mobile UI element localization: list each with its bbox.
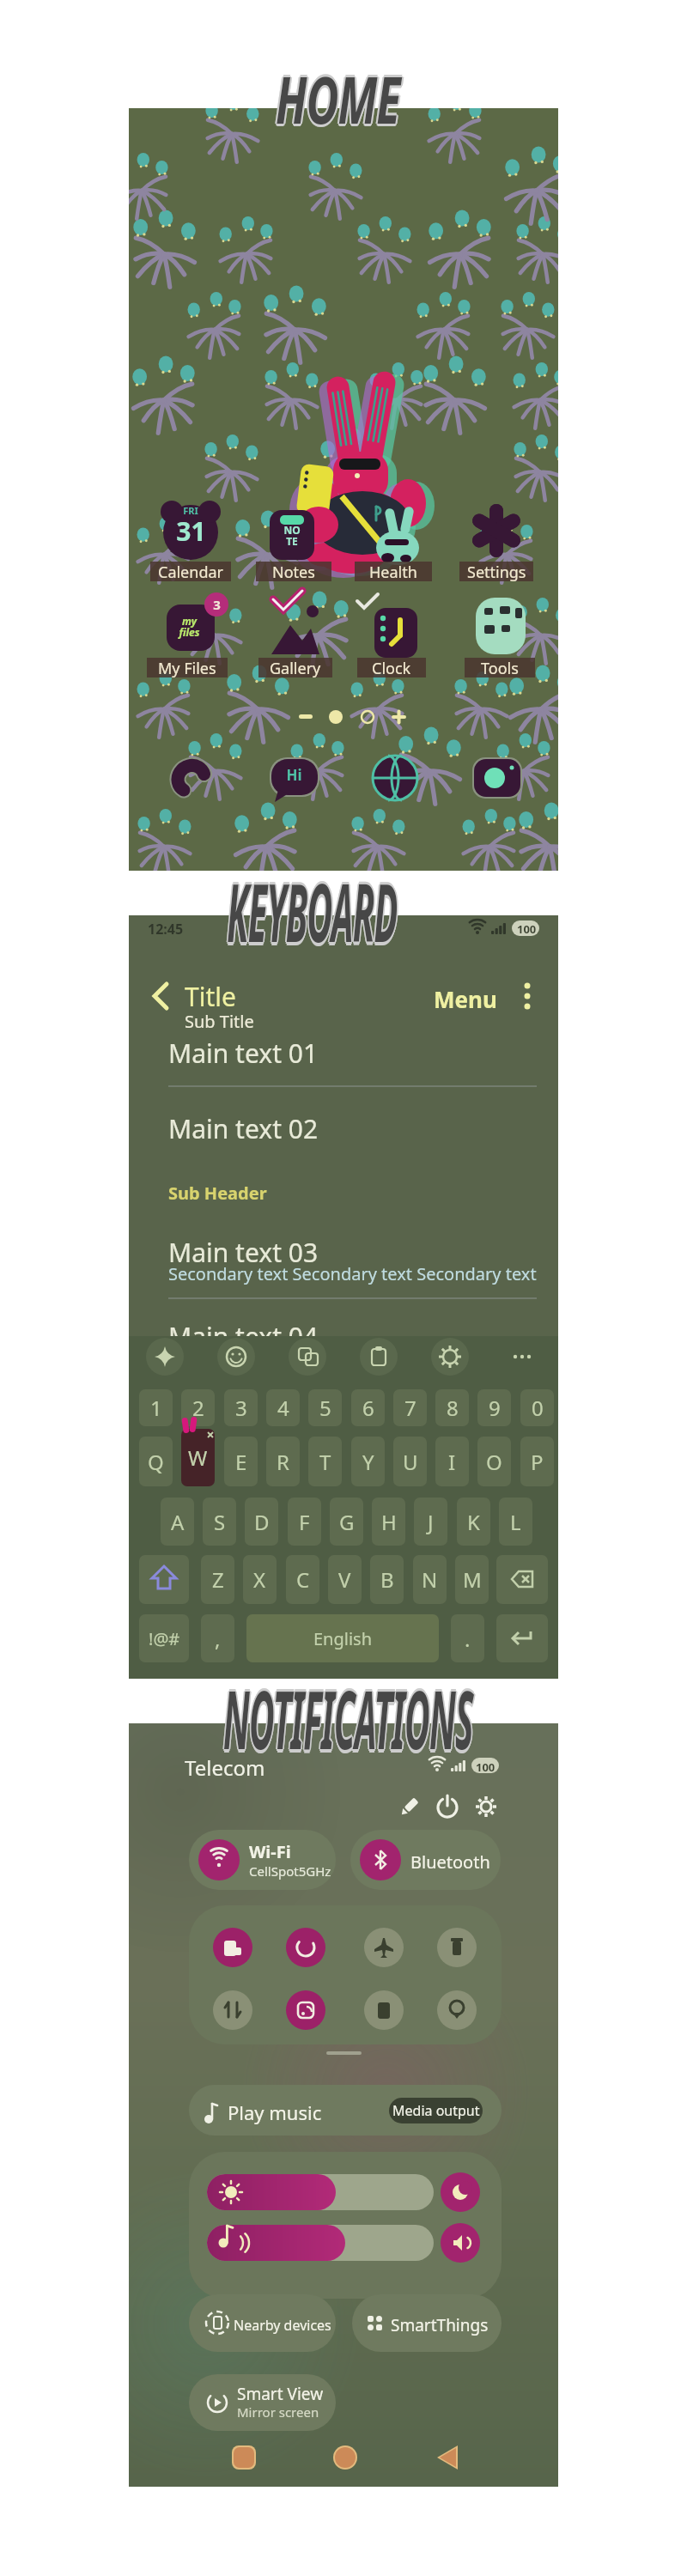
- staticText: K: [467, 1508, 480, 1536]
- button[interactable]: Media output: [389, 2098, 483, 2123]
- staticText: Sub Header: [168, 1182, 267, 1205]
- button[interactable]: I: [435, 1437, 469, 1486]
- button[interactable]: E: [224, 1437, 258, 1486]
- button[interactable]: SmartThings: [352, 2294, 502, 2352]
- staticText: Main text 04: [168, 1319, 319, 1354]
- button[interactable]: G: [330, 1498, 363, 1546]
- staticText: S: [214, 1508, 226, 1536]
- button[interactable]: J: [414, 1498, 447, 1546]
- staticText: L: [510, 1508, 521, 1536]
- button[interactable]: Gallery: [258, 658, 332, 677]
- button[interactable]: T: [308, 1437, 342, 1486]
- button[interactable]: K: [457, 1498, 490, 1546]
- staticText: C: [296, 1565, 310, 1594]
- button[interactable]: 3: [224, 1389, 258, 1426]
- button[interactable]: 9: [477, 1389, 511, 1426]
- button[interactable]: L: [499, 1498, 532, 1546]
- staticText: N: [422, 1565, 438, 1594]
- button[interactable]: [139, 1555, 189, 1604]
- staticText: Z: [212, 1565, 224, 1594]
- button[interactable]: Calendar: [150, 562, 231, 581]
- button[interactable]: 8: [435, 1389, 469, 1426]
- button[interactable]: Settings: [459, 562, 533, 581]
- staticText: Main text 02: [168, 1111, 319, 1146]
- button[interactable]: R: [266, 1437, 300, 1486]
- staticText: Tools: [481, 658, 519, 677]
- staticText: Telecom: [185, 1753, 265, 1782]
- staticText: HOME: [277, 53, 401, 141]
- staticText: Media output: [392, 2101, 480, 2120]
- staticText: HOME: [274, 54, 398, 143]
- staticText: I: [448, 1448, 456, 1476]
- button[interactable]: ,: [201, 1614, 234, 1662]
- button[interactable]: [496, 1614, 548, 1662]
- button[interactable]: 4: [266, 1389, 300, 1426]
- button[interactable]: Q: [139, 1437, 173, 1486]
- button[interactable]: P: [520, 1437, 554, 1486]
- staticText: 1: [150, 1394, 162, 1422]
- button[interactable]: 2: [181, 1389, 215, 1426]
- button[interactable]: Y: [351, 1437, 385, 1486]
- button[interactable]: 1: [139, 1389, 173, 1426]
- staticText: KEYBOARD: [226, 856, 396, 965]
- button[interactable]: X: [243, 1555, 277, 1604]
- staticText: KEYBOARD: [227, 859, 397, 969]
- button[interactable]: !@#: [139, 1614, 189, 1662]
- button[interactable]: F: [288, 1498, 321, 1546]
- staticText: NOTIFICATIONS: [223, 1663, 473, 1773]
- button[interactable]: Notes: [256, 562, 331, 581]
- staticText: Q: [148, 1448, 164, 1476]
- button[interactable]: English: [246, 1614, 439, 1662]
- button[interactable]: H: [372, 1498, 405, 1546]
- staticText: Health: [369, 562, 417, 581]
- staticText: R: [277, 1448, 289, 1476]
- button[interactable]: M: [455, 1555, 489, 1604]
- button[interactable]: 7: [393, 1389, 427, 1426]
- button[interactable]: S: [203, 1498, 236, 1546]
- staticText: 100: [476, 1759, 495, 1775]
- staticText: E: [235, 1448, 247, 1476]
- staticText: H: [381, 1508, 397, 1536]
- button[interactable]: Tools: [465, 658, 535, 677]
- button[interactable]: U: [393, 1437, 427, 1486]
- button[interactable]: [181, 1429, 215, 1486]
- button[interactable]: B: [370, 1555, 404, 1604]
- button[interactable]: Clock: [357, 658, 426, 677]
- staticText: my files: [179, 614, 200, 640]
- staticText: HOME: [276, 54, 400, 143]
- button[interactable]: [496, 1555, 548, 1604]
- button[interactable]: V: [328, 1555, 362, 1604]
- staticText: 7: [404, 1394, 416, 1422]
- staticText: KEYBOARD: [227, 856, 397, 965]
- button[interactable]: A: [161, 1498, 194, 1546]
- staticText: 31: [176, 513, 206, 549]
- button[interactable]: Play music: [189, 2085, 502, 2136]
- button[interactable]: Nearby devices: [189, 2294, 336, 2352]
- staticText: 2: [192, 1394, 204, 1422]
- button[interactable]: C: [286, 1555, 319, 1604]
- button[interactable]: Health: [355, 562, 432, 581]
- staticText: NOTIFICATIONS: [223, 1660, 473, 1770]
- button[interactable]: .: [451, 1614, 484, 1662]
- button[interactable]: 0: [520, 1389, 554, 1426]
- button[interactable]: Smart View: [189, 2374, 336, 2431]
- button[interactable]: D: [245, 1498, 278, 1546]
- button[interactable]: 6: [351, 1389, 385, 1426]
- staticText: SmartThings: [391, 2314, 489, 2336]
- button[interactable]: Wi-Fi: [189, 1830, 336, 1890]
- staticText: Wi-Fi: [249, 1840, 291, 1863]
- staticText: 3: [235, 1394, 247, 1422]
- button[interactable]: O: [477, 1437, 511, 1486]
- button[interactable]: Bluetooth: [350, 1830, 501, 1890]
- button[interactable]: 5: [308, 1389, 342, 1426]
- staticText: F: [299, 1508, 310, 1536]
- staticText: 12:45: [148, 920, 184, 939]
- staticText: KEYBOARD: [228, 854, 398, 964]
- staticText: Main text 03: [168, 1235, 319, 1270]
- button[interactable]: My Files: [147, 658, 228, 677]
- button[interactable]: N: [413, 1555, 447, 1604]
- staticText: 0: [532, 1394, 544, 1422]
- button[interactable]: Z: [201, 1555, 234, 1604]
- staticText: P: [531, 1448, 544, 1476]
- staticText: FRI: [183, 504, 198, 517]
